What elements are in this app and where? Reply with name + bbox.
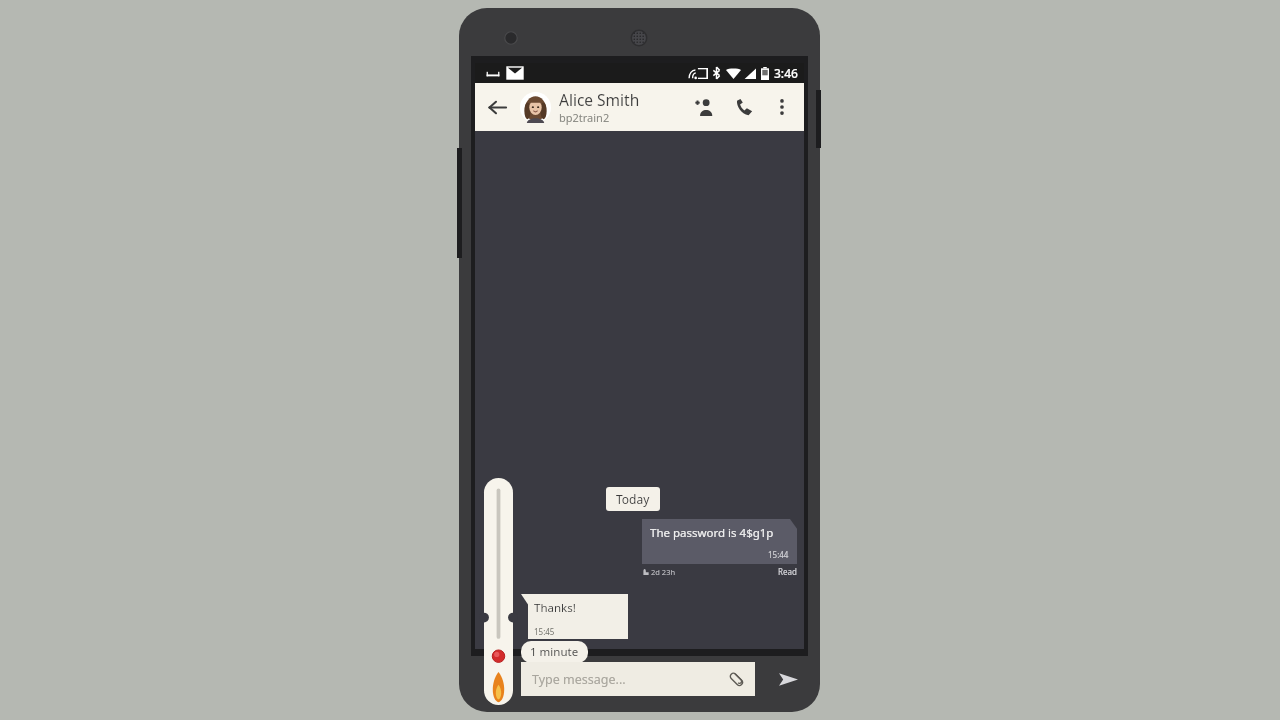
staticText: Thanks! xyxy=(534,600,576,616)
button[interactable]: Message expiry slider xyxy=(484,478,513,705)
button[interactable]: Call xyxy=(724,87,764,127)
staticText: bp2train2 xyxy=(559,110,610,125)
button[interactable]: More options xyxy=(764,89,800,125)
staticText: The password is 4$g1p xyxy=(650,525,774,541)
button[interactable]: Send xyxy=(772,663,804,695)
staticText: Alice Smith xyxy=(559,89,640,110)
button[interactable]: Add person xyxy=(684,87,724,127)
staticText: 15:45 xyxy=(534,626,555,637)
staticText: 1 minute xyxy=(530,644,579,660)
button[interactable]: Thanks! xyxy=(521,594,628,639)
button[interactable]: 1 minute xyxy=(521,641,588,663)
button[interactable]: Back xyxy=(475,85,519,129)
staticText: 15:44 xyxy=(768,549,789,560)
button[interactable]: Attach file xyxy=(725,668,747,690)
staticText: Read xyxy=(778,566,797,577)
button[interactable]: Today xyxy=(606,487,660,511)
staticText: 3:46 xyxy=(774,65,798,81)
button[interactable]: The password is 4$g1p xyxy=(642,519,797,564)
staticText: Today xyxy=(616,491,650,507)
staticText: 2d 23h xyxy=(651,567,676,577)
button[interactable]: Type message... xyxy=(521,662,755,696)
staticText: Type message... xyxy=(532,671,626,688)
